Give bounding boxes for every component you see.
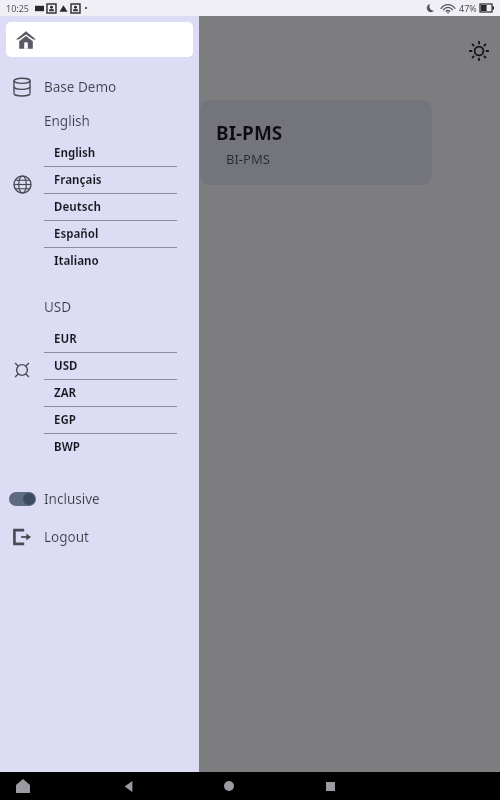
staticText: 10:25 [6, 2, 30, 14]
button[interactable]: Deutsch [44, 194, 177, 220]
button[interactable]: Français [44, 167, 177, 193]
button[interactable]: Home [6, 22, 193, 57]
button[interactable]: Base Demo [0, 70, 199, 104]
button[interactable]: Logout [0, 520, 199, 554]
button[interactable]: USD [44, 353, 177, 379]
staticText: Inclusive [44, 490, 100, 508]
staticText: EGP [54, 412, 76, 428]
staticText: USD [44, 298, 72, 316]
button[interactable]: Home [216, 773, 242, 799]
button[interactable]: Italiano [44, 248, 177, 274]
button[interactable]: BI-PMS [200, 100, 432, 185]
staticText: BI-PMS [216, 120, 283, 146]
staticText: Base Demo [44, 78, 117, 96]
staticText: BI-PMS [226, 150, 270, 168]
button[interactable]: BWP [44, 434, 177, 460]
staticText: English [54, 145, 96, 161]
button[interactable]: Inclusive toggle [9, 492, 36, 506]
staticText: ZAR [54, 385, 77, 401]
button[interactable]: Back [115, 773, 141, 799]
staticText: Logout [44, 528, 89, 546]
staticText: Italiano [54, 253, 99, 269]
button[interactable]: ZAR [44, 380, 177, 406]
staticText: USD [54, 358, 78, 374]
button[interactable]: EGP [44, 407, 177, 433]
staticText: 47% [459, 2, 477, 14]
staticText: English [44, 112, 90, 130]
button[interactable]: Recents [317, 773, 343, 799]
button[interactable]: English [44, 140, 177, 166]
button[interactable]: EUR [44, 326, 177, 352]
staticText: Español [54, 226, 99, 242]
staticText: BWP [54, 439, 80, 455]
staticText: Français [54, 172, 102, 188]
staticText: Deutsch [54, 199, 101, 215]
staticText: EUR [54, 331, 77, 347]
button[interactable]: Inclusive toggle [0, 482, 199, 516]
button[interactable]: Español [44, 221, 177, 247]
button[interactable]: Assistant [14, 777, 32, 795]
button[interactable]: Brightness [462, 34, 496, 68]
